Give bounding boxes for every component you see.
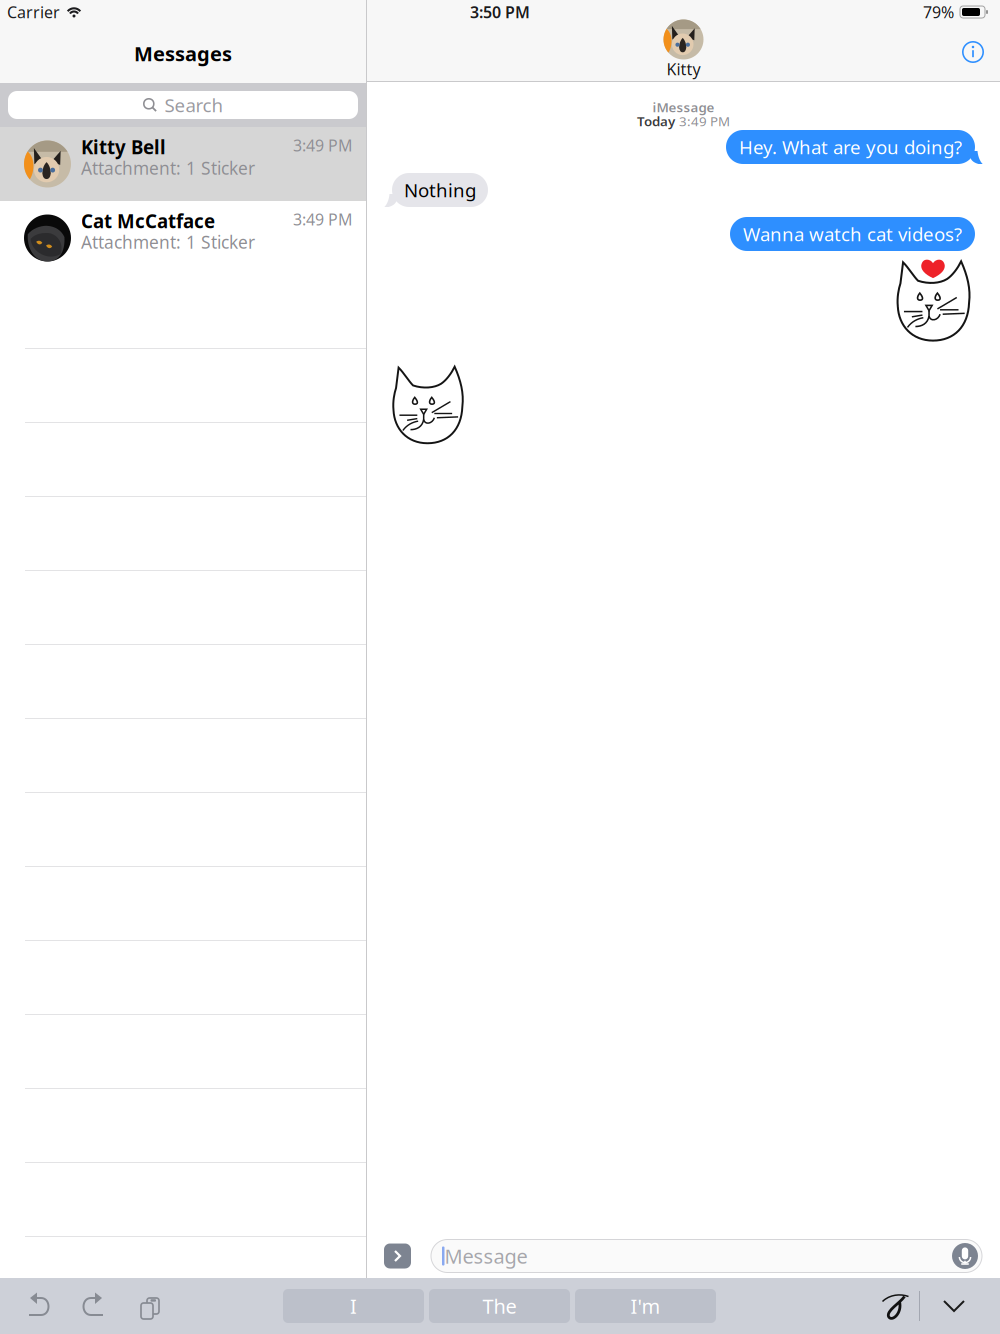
staticText: Kitty [666, 58, 700, 80]
button[interactable]: Nothing [392, 173, 488, 207]
staticText: iMessage [652, 98, 714, 116]
staticText: Hey. What are you doing? [739, 135, 962, 159]
button[interactable]: Dictate [952, 1243, 978, 1269]
staticText: The [482, 1293, 516, 1319]
button[interactable]: Cat sticker [385, 362, 470, 447]
button[interactable]: Kitty [623, 23, 743, 80]
staticText: 3:49 PM [293, 135, 353, 156]
button[interactable]: The [429, 1289, 570, 1323]
button[interactable]: Details [962, 41, 984, 63]
staticText: Wanna watch cat videos? [743, 222, 962, 246]
button[interactable]: Scribble [882, 1292, 909, 1319]
button[interactable]: Cat McCatface [0, 201, 366, 275]
button[interactable]: Kitty Bell [0, 127, 366, 201]
button[interactable]: Undo [28, 1295, 50, 1317]
button[interactable]: Cat sticker with heart [889, 257, 977, 345]
staticText: I'm [630, 1293, 660, 1319]
button[interactable]: Wanna watch cat videos? [730, 217, 975, 251]
button[interactable]: Apps [384, 1243, 411, 1268]
staticText: Message [444, 1243, 527, 1269]
staticText: 3:50 PM [470, 1, 530, 23]
staticText: Cat McCatface [81, 209, 215, 233]
staticText: Search [164, 93, 223, 117]
button[interactable]: Paste [137, 1295, 157, 1317]
button[interactable]: Hide keyboard [942, 1298, 966, 1314]
button[interactable]: I [283, 1289, 424, 1323]
staticText: 79% [923, 1, 954, 23]
staticText: Today [637, 112, 675, 130]
staticText: Attachment: 1 Sticker [81, 156, 255, 179]
staticText: 3:49 PM [679, 112, 730, 130]
button[interactable]: Search [8, 91, 358, 119]
staticText: Kitty Bell [81, 135, 166, 159]
staticText: Attachment: 1 Sticker [81, 230, 255, 253]
button[interactable]: Redo [82, 1295, 104, 1317]
staticText: 3:49 PM [293, 209, 353, 230]
button[interactable]: I'm [575, 1289, 716, 1323]
staticText: Messages [134, 40, 232, 67]
button[interactable]: Hey. What are you doing? [726, 130, 975, 164]
staticText: Carrier [7, 1, 60, 23]
staticText: Nothing [404, 178, 476, 202]
staticText: I [350, 1293, 357, 1319]
